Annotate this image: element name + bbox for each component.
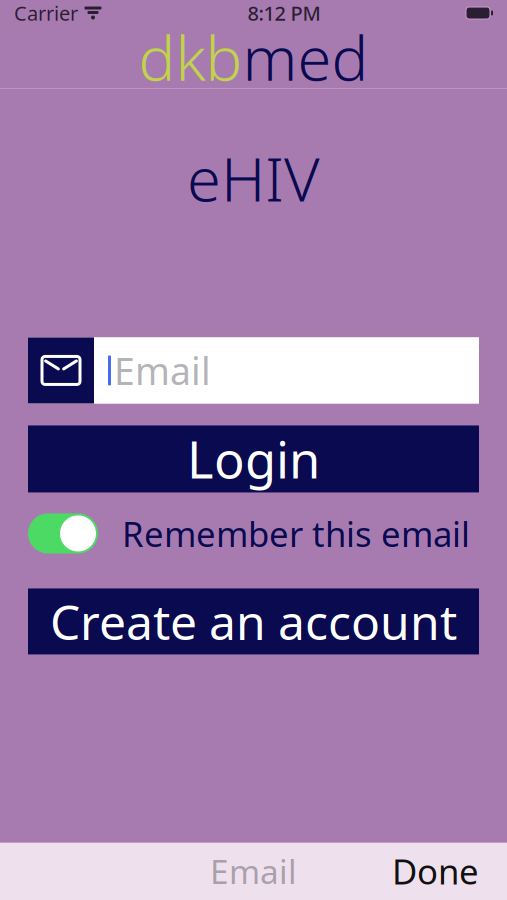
staticText: Carrier [14, 0, 78, 26]
button[interactable]: Login [28, 425, 479, 492]
staticText: 8:12 PM [247, 0, 320, 26]
staticText: dkb [138, 16, 242, 98]
staticText: Create an account [50, 590, 457, 653]
staticText: Done [392, 848, 479, 894]
staticText: Email [114, 346, 211, 395]
staticText: Login [187, 425, 320, 493]
staticText: Remember this email [122, 510, 470, 556]
button[interactable]: Remember this email [28, 513, 98, 553]
button[interactable]: Create an account [28, 588, 479, 654]
staticText: med [242, 16, 368, 98]
staticText: Email [210, 849, 297, 893]
button[interactable]: Done [378, 840, 493, 900]
staticText: eHIV [187, 137, 320, 218]
